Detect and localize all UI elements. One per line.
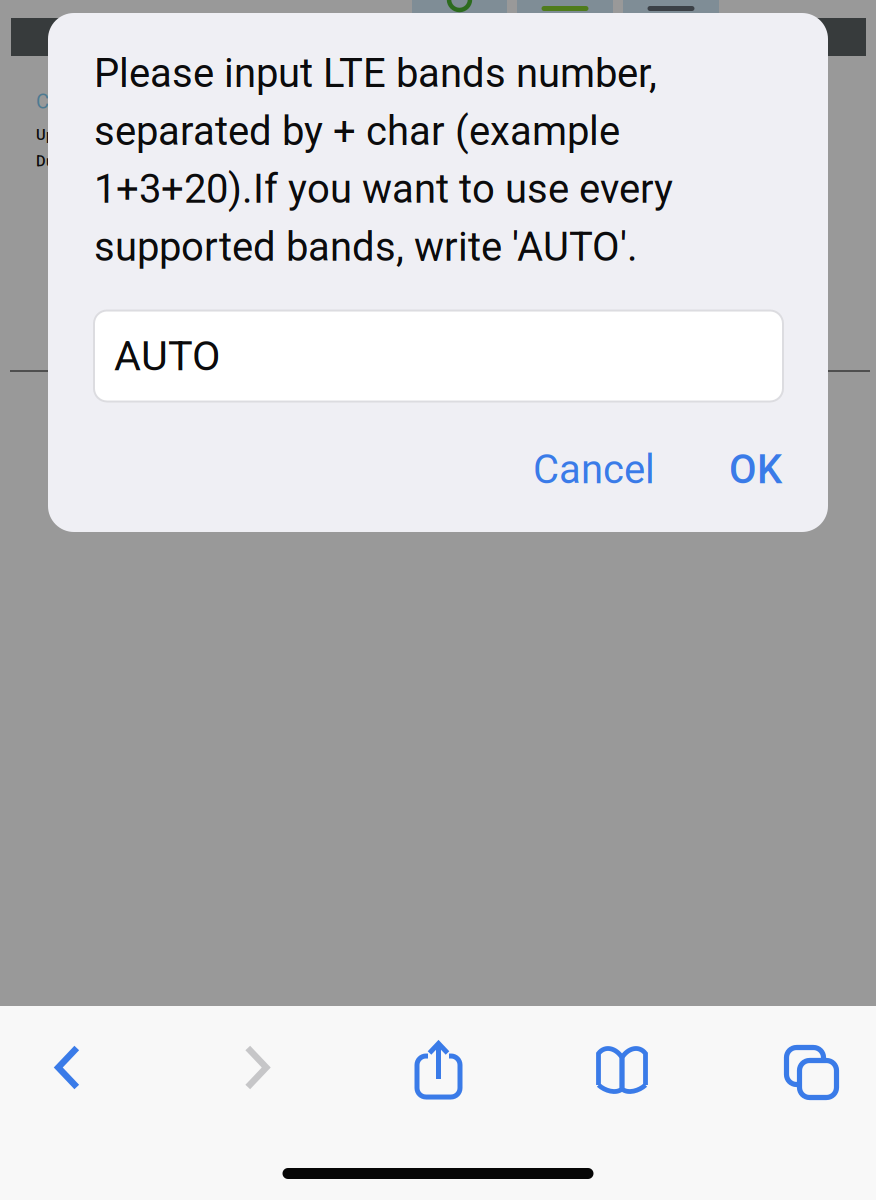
button[interactable]: Back	[0, 1020, 135, 1116]
staticText: OK	[729, 446, 782, 493]
staticText: Duplex	[36, 153, 81, 170]
staticText: AUTO	[114, 332, 220, 380]
staticText: Carrier	[36, 90, 97, 113]
button[interactable]: Forward	[135, 1020, 379, 1116]
staticText: Cancel	[533, 446, 655, 493]
button[interactable]: Share	[379, 1020, 498, 1116]
button[interactable]: Cancel	[515, 444, 673, 494]
button[interactable]: Tabs	[738, 1020, 876, 1116]
button[interactable]: OK	[711, 444, 800, 494]
button[interactable]: Bookmarks	[557, 1020, 687, 1116]
staticText: Please input LTE bands number, separated…	[94, 50, 673, 270]
staticText: Uplink	[36, 126, 78, 144]
